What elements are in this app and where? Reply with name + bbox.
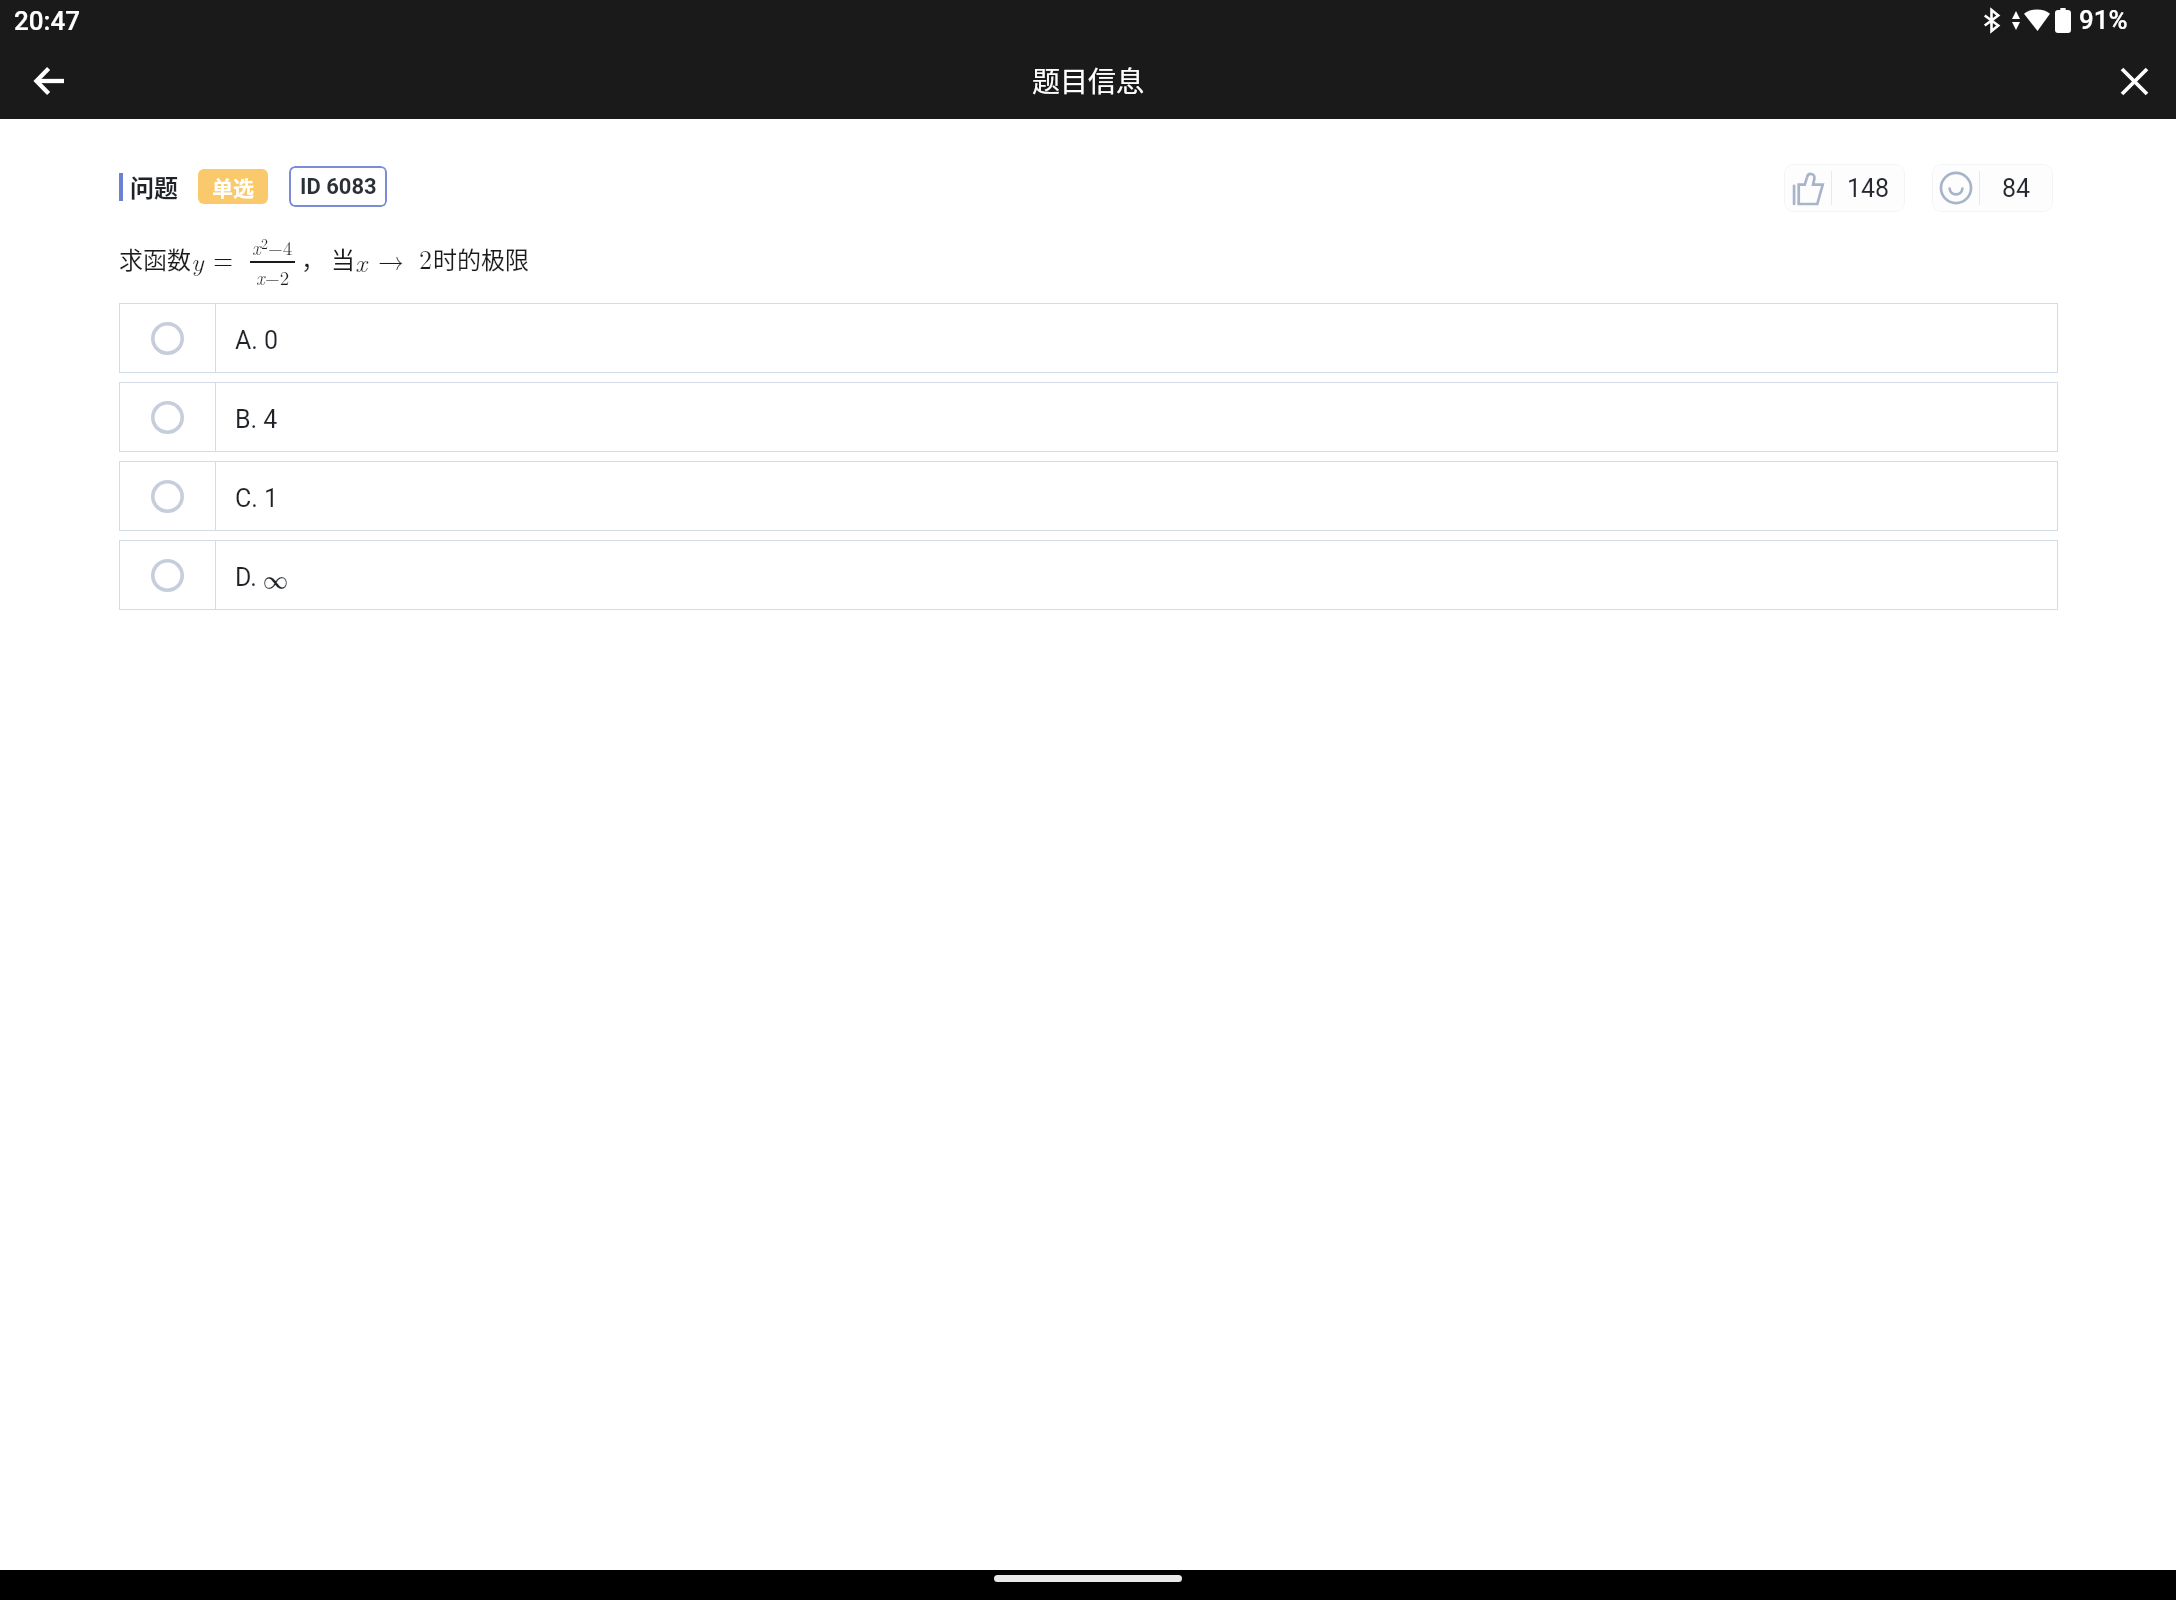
staticText: ， [301, 241, 325, 276]
staticText: ID 6083 [300, 174, 377, 200]
button[interactable]: A. 0 [119, 303, 2058, 373]
staticText: 当 [331, 241, 355, 276]
staticText: 148 [1847, 174, 1890, 203]
staticText: 单选 [212, 172, 254, 202]
staticText: x [256, 264, 265, 291]
staticText: ∞ [263, 561, 289, 596]
staticText: 时的极限 [433, 241, 529, 276]
button[interactable]: ID 6083 [289, 166, 387, 207]
staticText: −2 [265, 264, 290, 291]
staticText: 20:47 [14, 6, 81, 36]
button[interactable]: C. 1 [119, 461, 2058, 531]
staticText: 求函数 [119, 241, 191, 276]
staticText: −4 [268, 234, 293, 261]
staticText: D. [235, 563, 263, 592]
staticText: = [213, 240, 234, 277]
button[interactable]: D. [119, 540, 2058, 610]
staticText: 2 [261, 233, 268, 253]
button[interactable]: Back [21, 53, 77, 109]
staticText: A. 0 [235, 326, 279, 355]
staticText: B. 4 [235, 405, 278, 434]
button[interactable]: 148 [1784, 164, 1905, 212]
button[interactable]: Close [2106, 53, 2162, 109]
staticText: y [191, 242, 204, 279]
staticText: → [378, 241, 405, 278]
staticText: C. 1 [235, 484, 279, 513]
staticText: 2 [419, 240, 433, 277]
staticText: 84 [2002, 174, 2031, 203]
staticText: x [355, 243, 368, 280]
button[interactable]: 84 [1932, 164, 2053, 212]
staticText: x [252, 234, 261, 261]
staticText: 题目信息 [1032, 60, 1145, 101]
button[interactable]: B. 4 [119, 382, 2058, 452]
button[interactable]: 单选 [198, 169, 268, 204]
staticText: 91% [2079, 5, 2128, 35]
staticText: 问题 [130, 169, 178, 204]
